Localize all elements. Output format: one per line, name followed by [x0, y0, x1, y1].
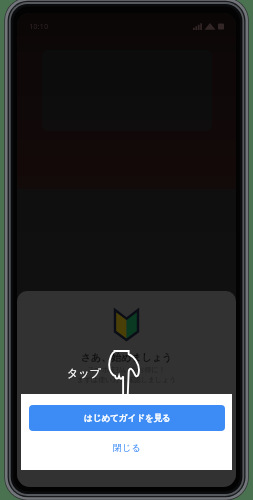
staticText: タップ: [67, 366, 101, 380]
staticText: さあ、始めましょう: [17, 351, 236, 364]
staticText: 閉じる: [113, 442, 141, 453]
staticText: スマホ支払いをお得に！ まずは使い方を確認しましょう: [17, 365, 236, 384]
button[interactable]: 閉じる: [21, 436, 232, 459]
staticText: はじめてガイドを見る: [84, 413, 171, 424]
button[interactable]: はじめてガイドを見る: [29, 405, 225, 431]
staticText: 10:10: [29, 21, 49, 31]
